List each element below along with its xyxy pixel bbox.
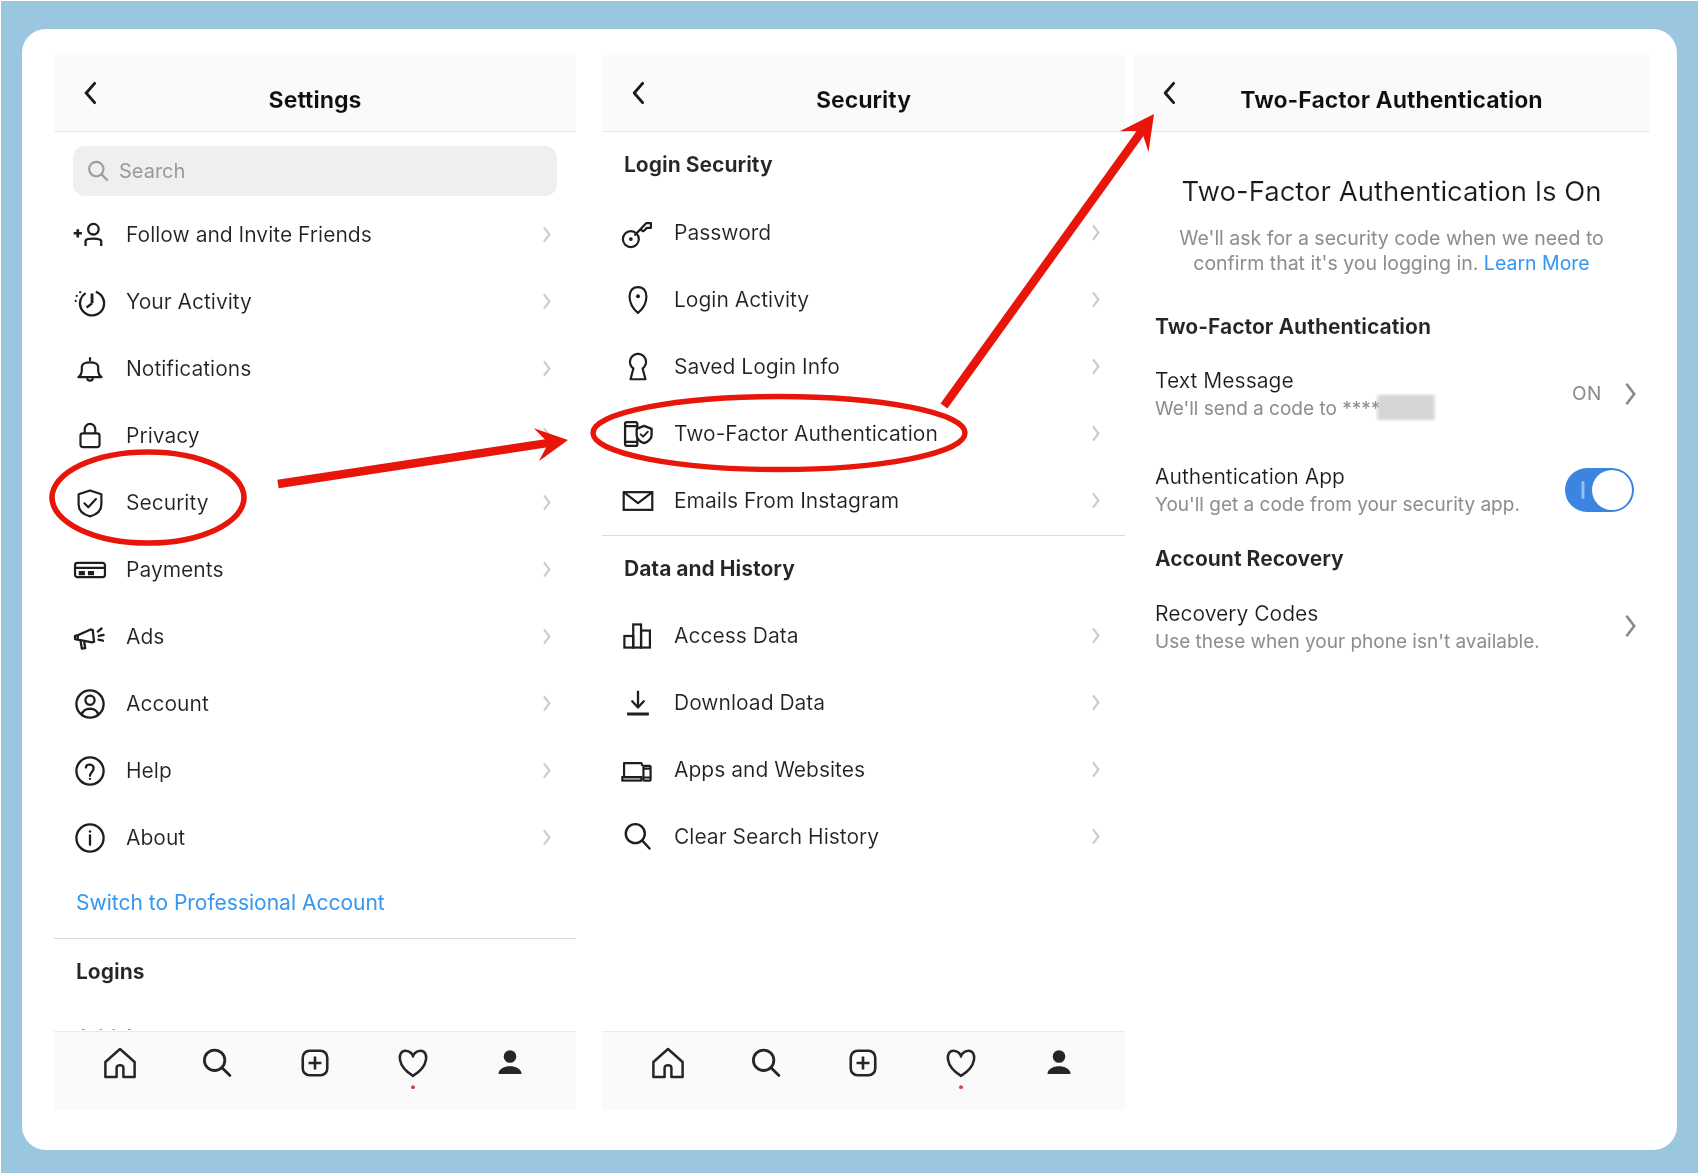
staticText: We'll ask for a security code when we ne… [1147, 226, 1636, 275]
button[interactable]: Home [636, 1032, 700, 1110]
staticText: About [126, 825, 186, 850]
button[interactable]: Account [54, 670, 576, 737]
staticText: Login Security [624, 152, 773, 177]
button[interactable]: Login Activity [602, 266, 1125, 333]
staticText: Authentication App [1155, 464, 1345, 489]
staticText: Password [674, 220, 772, 245]
staticText: Download Data [674, 690, 826, 715]
staticText: Access Data [674, 623, 799, 648]
button[interactable]: Two-Factor Authentication [602, 400, 1125, 467]
button[interactable]: Ads [54, 603, 576, 670]
staticText: We'll send a code to **** [1155, 397, 1381, 420]
staticText: Privacy [126, 423, 200, 448]
button[interactable]: Password [602, 199, 1125, 266]
button[interactable]: Profile [478, 1032, 542, 1110]
button[interactable]: Saved Login Info [602, 333, 1125, 400]
staticText: Help [126, 758, 172, 783]
button[interactable]: Privacy [54, 402, 576, 469]
staticText: Two-Factor Authentication Is On [1133, 174, 1650, 207]
staticText: Two-Factor Authentication [1155, 314, 1432, 339]
staticText: Logins [76, 959, 145, 984]
staticText: You'll get a code from your security app… [1155, 493, 1520, 516]
staticText: Search [119, 159, 186, 183]
staticText: Security [126, 490, 209, 515]
button[interactable]: Home [88, 1032, 152, 1110]
staticText: Notifications [126, 356, 252, 381]
button[interactable]: Payments [54, 536, 576, 603]
staticText: Text Message [1155, 368, 1294, 393]
button[interactable]: Activity [929, 1032, 993, 1110]
button[interactable]: Search [73, 146, 557, 196]
button[interactable]: Search [734, 1032, 798, 1110]
staticText: Account Recovery [1155, 546, 1344, 571]
staticText: Payments [126, 557, 224, 582]
button[interactable]: Help [54, 737, 576, 804]
button[interactable]: Back [62, 63, 120, 123]
staticText: Settings [54, 86, 576, 114]
button[interactable]: Add Account [54, 1026, 576, 1031]
button[interactable]: Back [1141, 63, 1199, 123]
button[interactable]: Access Data [602, 602, 1125, 669]
staticText: Two-Factor Authentication [674, 421, 938, 446]
button[interactable]: Recovery Codes [1133, 590, 1650, 660]
button[interactable]: Clear Search History [602, 803, 1125, 870]
staticText: Use these when your phone isn't availabl… [1155, 630, 1540, 653]
button[interactable]: Security [54, 469, 576, 536]
staticText: Login Activity [674, 287, 810, 312]
button[interactable]: Your Activity [54, 268, 576, 335]
staticText: Two-Factor Authentication [1133, 86, 1650, 114]
staticText: Switch to Professional Account [76, 890, 385, 915]
button[interactable]: Search [185, 1032, 249, 1110]
button[interactable]: Activity [381, 1032, 445, 1110]
button[interactable]: Switch to Professional Account [54, 878, 576, 926]
button[interactable]: About [54, 804, 576, 871]
staticText: Your Activity [126, 289, 252, 314]
button[interactable]: Emails From Instagram [602, 467, 1125, 534]
staticText: Account [126, 691, 209, 716]
button[interactable]: Notifications [54, 335, 576, 402]
button[interactable]: Create [831, 1032, 895, 1110]
staticText: Recovery Codes [1155, 601, 1319, 626]
button[interactable]: Authentication App toggle [1565, 468, 1634, 512]
staticText: Security [602, 86, 1125, 114]
button[interactable]: Create [283, 1032, 347, 1110]
button[interactable]: Back [610, 63, 668, 123]
button[interactable]: Profile [1027, 1032, 1091, 1110]
staticText: Clear Search History [674, 824, 880, 849]
button[interactable]: Follow and Invite Friends [54, 201, 576, 268]
staticText: Apps and Websites [674, 757, 866, 782]
button[interactable]: Text Message [1133, 357, 1650, 427]
staticText: Ads [126, 624, 165, 649]
staticText: Saved Login Info [674, 354, 840, 379]
staticText: Add Account [76, 1026, 205, 1030]
button[interactable]: Download Data [602, 669, 1125, 736]
button[interactable]: Authentication App [1133, 454, 1650, 524]
staticText: Data and History [624, 556, 795, 581]
staticText: ON [1572, 382, 1602, 405]
staticText: Emails From Instagram [674, 488, 900, 513]
staticText: Follow and Invite Friends [126, 222, 372, 247]
button[interactable]: Apps and Websites [602, 736, 1125, 803]
